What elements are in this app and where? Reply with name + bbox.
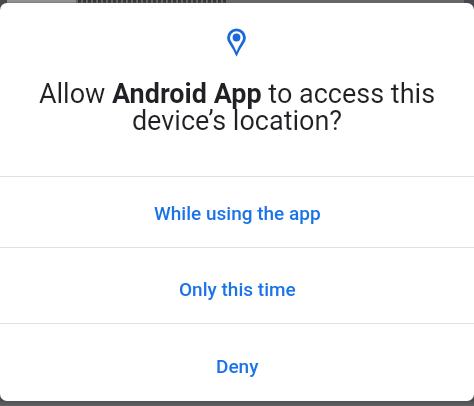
button[interactable]: Deny xyxy=(0,323,474,401)
staticText: Deny xyxy=(216,355,259,377)
staticText: Only this time xyxy=(179,278,296,300)
button[interactable]: While using the app xyxy=(0,176,474,247)
staticText: While using the app xyxy=(154,202,321,224)
button[interactable]: Only this time xyxy=(0,247,474,323)
staticText: Allow Android App to access this device’… xyxy=(0,78,474,137)
